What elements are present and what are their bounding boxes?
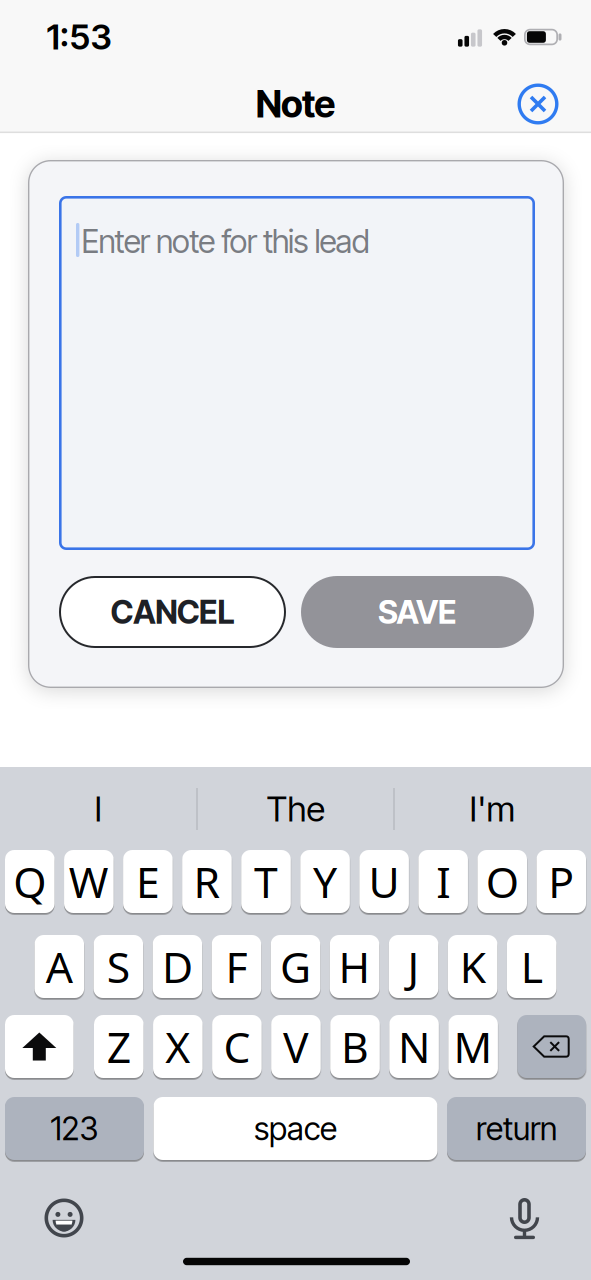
- button[interactable]: Emoji: [36, 1190, 92, 1246]
- staticText: B: [341, 1018, 369, 1075]
- button[interactable]: A: [34, 935, 84, 998]
- staticText: N: [398, 1018, 430, 1075]
- staticText: X: [165, 1018, 190, 1075]
- button[interactable]: E: [123, 850, 173, 913]
- staticText: Q: [13, 853, 46, 910]
- button[interactable]: 123: [5, 1097, 144, 1160]
- staticText: V: [283, 1018, 309, 1075]
- staticText: return: [476, 1109, 557, 1148]
- button[interactable]: F: [212, 935, 261, 998]
- button[interactable]: Close: [515, 81, 561, 127]
- staticText: Y: [313, 853, 337, 910]
- staticText: Enter note for this lead: [81, 222, 370, 261]
- staticText: L: [521, 938, 543, 995]
- button[interactable]: Delete: [517, 1015, 586, 1078]
- staticText: P: [548, 853, 574, 910]
- staticText: SAVE: [378, 593, 457, 631]
- staticText: K: [460, 938, 486, 995]
- button[interactable]: Shift: [5, 1015, 74, 1078]
- button[interactable]: C: [212, 1015, 262, 1078]
- button[interactable]: B: [330, 1015, 380, 1078]
- staticText: I'm: [469, 788, 515, 830]
- staticText: Z: [107, 1018, 131, 1075]
- button[interactable]: X: [153, 1015, 203, 1078]
- button[interactable]: CANCEL: [59, 576, 286, 648]
- button[interactable]: G: [271, 935, 320, 998]
- staticText: A: [46, 938, 73, 995]
- button[interactable]: Z: [94, 1015, 144, 1078]
- button[interactable]: S: [93, 935, 143, 998]
- button[interactable]: N: [389, 1015, 439, 1078]
- button[interactable]: space: [153, 1097, 437, 1160]
- button[interactable]: SAVE: [301, 576, 534, 648]
- button[interactable]: return: [447, 1097, 586, 1160]
- staticText: E: [136, 853, 160, 910]
- button[interactable]: H: [330, 935, 379, 998]
- button[interactable]: V: [271, 1015, 321, 1078]
- button[interactable]: O: [477, 850, 527, 913]
- button[interactable]: I'm: [402, 777, 582, 841]
- button[interactable]: L: [507, 935, 556, 998]
- button[interactable]: P: [536, 850, 586, 913]
- button[interactable]: M: [448, 1015, 498, 1078]
- button[interactable]: U: [359, 850, 409, 913]
- staticText: 1:53: [46, 16, 111, 58]
- button[interactable]: K: [448, 935, 497, 998]
- staticText: W: [69, 853, 109, 910]
- staticText: H: [339, 938, 371, 995]
- staticText: U: [369, 853, 400, 910]
- staticText: M: [454, 1018, 493, 1075]
- button[interactable]: T: [241, 850, 291, 913]
- staticText: R: [193, 853, 220, 910]
- staticText: space: [254, 1109, 337, 1148]
- staticText: I: [436, 853, 450, 910]
- staticText: I: [94, 788, 102, 830]
- staticText: C: [223, 1018, 250, 1075]
- staticText: G: [280, 938, 311, 995]
- button[interactable]: D: [153, 935, 202, 998]
- staticText: Note: [256, 81, 335, 127]
- button[interactable]: Y: [300, 850, 350, 913]
- staticText: CANCEL: [110, 593, 234, 631]
- button[interactable]: Dictate: [496, 1190, 552, 1246]
- button[interactable]: The: [205, 777, 385, 841]
- button[interactable]: Q: [5, 850, 55, 913]
- button[interactable]: W: [64, 850, 114, 913]
- staticText: S: [107, 938, 130, 995]
- staticText: J: [408, 938, 420, 995]
- staticText: 123: [50, 1109, 98, 1148]
- button[interactable]: I: [418, 850, 468, 913]
- button[interactable]: I: [8, 777, 188, 841]
- staticText: F: [225, 938, 247, 995]
- button[interactable]: J: [389, 935, 438, 998]
- staticText: O: [486, 853, 519, 910]
- staticText: The: [266, 788, 324, 830]
- button[interactable]: R: [182, 850, 232, 913]
- staticText: T: [254, 853, 278, 910]
- staticText: D: [162, 938, 193, 995]
